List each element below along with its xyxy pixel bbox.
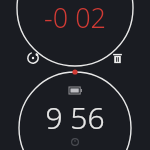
staticText: -0 02 [44, 0, 106, 31]
button[interactable]: Alarm [64, 136, 86, 148]
staticText: 9 56 [45, 97, 105, 131]
button[interactable]: -0 02 [20, 0, 130, 31]
button[interactable]: Reset [25, 50, 41, 66]
button[interactable]: Delete [109, 50, 125, 66]
button[interactable]: 9 56 [15, 97, 135, 131]
button[interactable]: Battery [65, 85, 85, 96]
